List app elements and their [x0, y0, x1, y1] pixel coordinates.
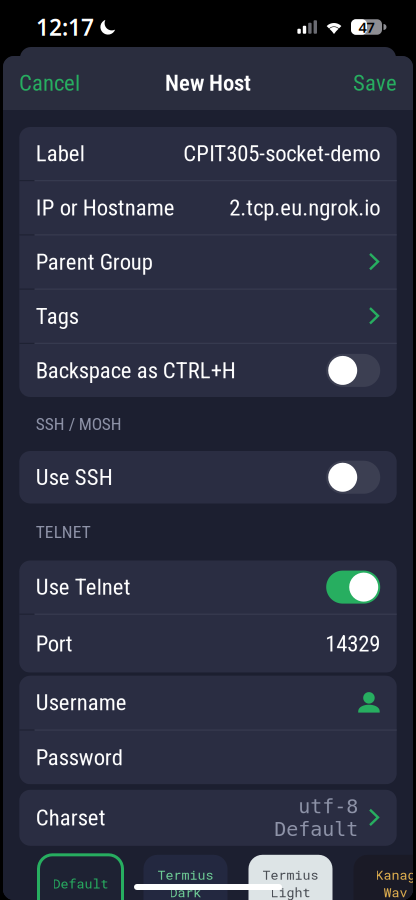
staticText: Charset: [36, 804, 106, 831]
staticText: Cancel: [19, 70, 80, 96]
staticText: SSH / MOSH: [36, 414, 122, 434]
staticText: Termius: [157, 866, 213, 883]
staticText: Wav: [383, 883, 407, 900]
staticText: Label: [36, 140, 85, 167]
staticText: Light: [270, 883, 310, 900]
button[interactable]: Termius: [248, 855, 332, 900]
button[interactable]: Cancel: [3, 56, 92, 110]
button[interactable]: Parent Group: [19, 235, 397, 289]
button[interactable]: Backspace as CTRL+H: [19, 344, 397, 397]
staticText: Tags: [36, 303, 79, 329]
staticText: TELNET: [36, 522, 91, 542]
staticText: New Host: [165, 70, 251, 96]
button[interactable]: Kanag: [353, 855, 416, 900]
button[interactable]: Use Telnet: [19, 560, 397, 614]
staticText: utf-8: [298, 795, 358, 818]
button[interactable]: Label: [19, 127, 397, 180]
staticText: Dark: [169, 883, 201, 900]
staticText: Default: [52, 874, 108, 892]
button[interactable]: Username: [19, 676, 397, 729]
button[interactable]: Charset: [19, 790, 397, 846]
button[interactable]: Default: [38, 855, 122, 900]
button[interactable]: Save: [341, 56, 413, 110]
staticText: Port: [36, 630, 73, 657]
staticText: Save: [353, 70, 397, 96]
staticText: 47: [358, 17, 374, 37]
staticText: Kanag: [375, 866, 415, 883]
button[interactable]: Password: [19, 730, 397, 784]
staticText: Termius: [262, 866, 318, 883]
button[interactable]: Tags: [19, 290, 397, 343]
staticText: 14329: [325, 630, 380, 657]
staticText: Default: [274, 818, 358, 840]
button[interactable]: IP or Hostname: [19, 181, 397, 234]
staticText: 12:17: [36, 12, 94, 42]
button[interactable]: Termius: [143, 855, 227, 900]
staticText: 2.tcp.eu.ngrok.io: [229, 194, 380, 221]
staticText: Backspace as CTRL+H: [36, 357, 236, 384]
button[interactable]: Use SSH: [19, 451, 397, 503]
button[interactable]: Port: [19, 615, 397, 673]
staticText: Use Telnet: [36, 574, 131, 600]
staticText: Password: [36, 744, 123, 771]
staticText: IP or Hostname: [36, 194, 175, 221]
staticText: Parent Group: [36, 249, 153, 275]
staticText: Use SSH: [36, 464, 113, 491]
staticText: CPIT305-socket-demo: [183, 140, 380, 167]
staticText: Username: [36, 689, 127, 716]
